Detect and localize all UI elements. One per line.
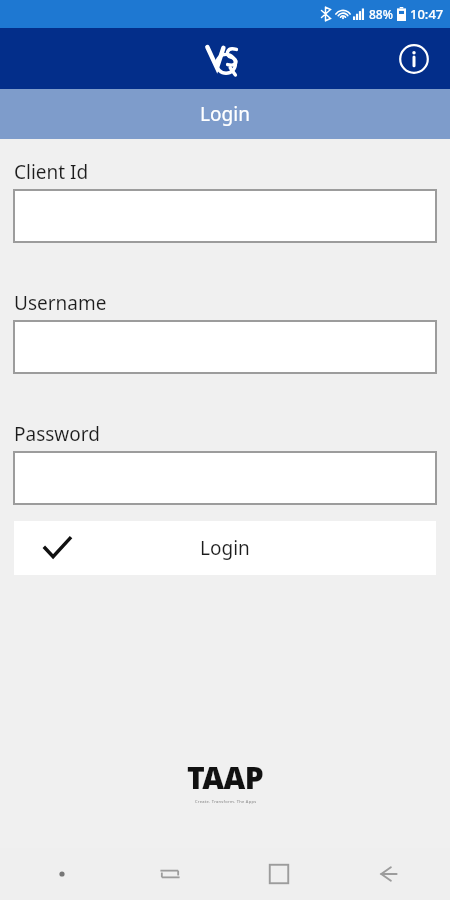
button[interactable] bbox=[14, 321, 436, 373]
button[interactable] bbox=[14, 190, 436, 242]
staticText: Login bbox=[200, 101, 250, 127]
staticText: Username bbox=[14, 290, 107, 316]
button[interactable]: Switch apps bbox=[116, 848, 224, 900]
staticText: 10:47 bbox=[410, 5, 444, 23]
button[interactable]: Recents bbox=[224, 848, 333, 900]
button[interactable]: Menu bbox=[8, 848, 116, 900]
staticText: TAAP bbox=[187, 757, 264, 798]
staticText: 88% bbox=[369, 6, 393, 22]
button[interactable]: Back bbox=[333, 848, 442, 900]
staticText: Login bbox=[200, 535, 250, 561]
staticText: Create. Transform. The Apps bbox=[195, 799, 257, 804]
staticText: Client Id bbox=[14, 159, 89, 185]
button[interactable] bbox=[14, 452, 436, 504]
button[interactable]: Information bbox=[392, 37, 436, 81]
button[interactable]: Login bbox=[14, 521, 436, 575]
staticText: Password bbox=[14, 421, 100, 447]
